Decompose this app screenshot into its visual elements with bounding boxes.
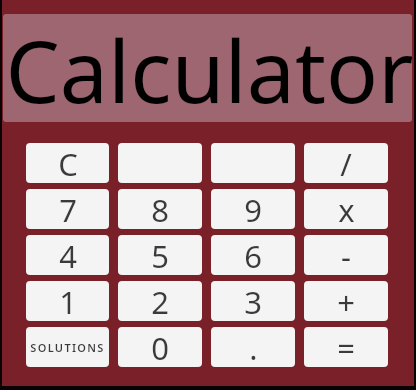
button[interactable]: blank key <box>118 143 202 183</box>
button[interactable]: SOLUTIONS <box>26 327 109 367</box>
staticText: C <box>58 143 78 183</box>
button[interactable]: 8 <box>118 189 202 229</box>
staticText: = <box>337 327 355 367</box>
button[interactable]: blank key <box>211 143 295 183</box>
button[interactable]: 3 <box>211 281 295 321</box>
staticText: 7 <box>59 189 77 229</box>
button[interactable]: - <box>304 235 388 275</box>
button[interactable]: 6 <box>211 235 295 275</box>
staticText: 0 <box>151 327 169 367</box>
staticText: 6 <box>244 235 262 275</box>
button[interactable]: 0 <box>118 327 202 367</box>
button[interactable]: C <box>26 143 109 183</box>
staticText: 1 <box>59 281 77 321</box>
button[interactable]: / <box>304 143 388 183</box>
staticText: 2 <box>151 281 169 321</box>
button[interactable]: 4 <box>26 235 109 275</box>
button[interactable]: x <box>304 189 388 229</box>
button[interactable]: 5 <box>118 235 202 275</box>
button[interactable]: 7 <box>26 189 109 229</box>
staticText: 8 <box>151 189 169 229</box>
staticText: SOLUTIONS <box>30 340 105 355</box>
button[interactable]: . <box>211 327 295 367</box>
button[interactable]: + <box>304 281 388 321</box>
button[interactable]: 1 <box>26 281 109 321</box>
staticText: - <box>341 235 351 275</box>
staticText: / <box>340 143 352 183</box>
staticText: 4 <box>59 235 77 275</box>
staticText: x <box>338 189 355 229</box>
button[interactable]: 9 <box>211 189 295 229</box>
staticText: 9 <box>244 189 262 229</box>
staticText: + <box>337 281 355 321</box>
staticText: 5 <box>151 235 169 275</box>
button[interactable]: 2 <box>118 281 202 321</box>
staticText: Calculator <box>5 14 412 119</box>
staticText: 3 <box>244 281 262 321</box>
staticText: . <box>249 327 258 367</box>
button[interactable]: Calculator <box>3 14 412 122</box>
button[interactable]: = <box>304 327 388 367</box>
